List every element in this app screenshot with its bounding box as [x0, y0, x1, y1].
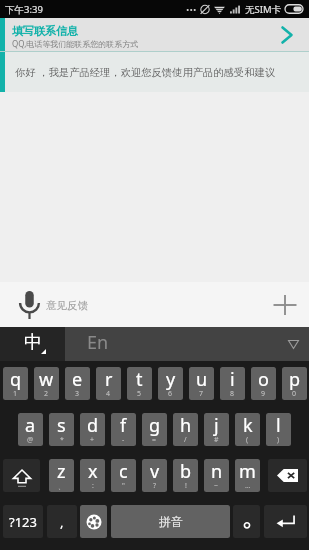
staticText: 意见反馈 — [46, 299, 88, 312]
staticText: 5 — [137, 389, 142, 399]
button[interactable]: En — [65, 327, 309, 361]
button[interactable]: f — [111, 413, 136, 446]
button[interactable]: v — [142, 459, 167, 492]
button[interactable]: , — [47, 505, 77, 538]
staticText: i — [230, 367, 235, 392]
staticText: h — [180, 413, 192, 438]
staticText: 填写联系信息 — [12, 24, 78, 38]
staticText: ~ — [214, 481, 219, 491]
staticText: * — [60, 435, 64, 445]
button[interactable]: ?123 — [3, 505, 43, 538]
staticText: 下午3:39 — [5, 3, 43, 16]
staticText: En — [87, 330, 109, 355]
staticText: m — [239, 459, 256, 484]
button[interactable]: x — [80, 459, 105, 492]
staticText: ( — [246, 435, 249, 445]
staticText: 6 — [168, 389, 173, 399]
staticText: 中 — [24, 331, 42, 354]
button[interactable]: Add attachment — [266, 286, 304, 324]
staticText: 、 — [58, 482, 65, 491]
staticText: + — [90, 435, 95, 445]
button[interactable]: r — [96, 367, 121, 400]
staticText: g — [149, 413, 161, 438]
staticText: o — [258, 367, 269, 392]
button[interactable]: g — [142, 413, 167, 446]
button[interactable]: Voice input — [9, 285, 49, 325]
button[interactable]: Change language — [80, 505, 107, 538]
button[interactable]: u — [189, 367, 214, 400]
staticText: d — [87, 413, 99, 438]
button[interactable]: p — [282, 367, 307, 400]
staticText: … — [245, 481, 251, 491]
button[interactable]: m — [235, 459, 260, 492]
staticText: l — [276, 413, 281, 438]
staticText: y — [166, 367, 176, 392]
button[interactable]: t — [127, 367, 152, 400]
staticText: 你好 ，我是产品经理，欢迎您反馈使用产品的感受和建议 — [15, 65, 276, 79]
staticText: n — [211, 459, 223, 484]
staticText: e — [72, 367, 83, 392]
staticText: c — [119, 459, 128, 484]
staticText: 9 — [261, 389, 266, 399]
button[interactable]: n — [204, 459, 229, 492]
button[interactable]: w — [34, 367, 59, 400]
staticText: @ — [27, 435, 34, 445]
staticText: x — [88, 459, 98, 484]
staticText: " — [122, 481, 125, 491]
staticText: k — [243, 413, 253, 438]
staticText: 3 — [75, 389, 80, 399]
staticText: r — [105, 367, 113, 392]
button[interactable]: l — [266, 413, 291, 446]
staticText: 1 — [13, 389, 18, 399]
staticText: 7 — [199, 389, 204, 399]
button[interactable]: Shift — [3, 459, 40, 492]
staticText: t — [136, 367, 143, 392]
staticText: ) — [277, 435, 280, 445]
staticText: 无SIM卡 — [245, 3, 282, 16]
button[interactable]: s — [49, 413, 74, 446]
staticText: 8 — [230, 389, 235, 399]
staticText: f — [120, 413, 127, 438]
staticText: : — [92, 481, 94, 491]
button[interactable]: y — [158, 367, 183, 400]
button[interactable]: 拼音 — [111, 505, 230, 538]
button[interactable]: o — [251, 367, 276, 400]
button[interactable]: Enter — [264, 505, 307, 538]
staticText: ? — [153, 481, 157, 491]
button[interactable]: z — [49, 459, 74, 492]
button[interactable]: d — [80, 413, 105, 446]
staticText: b — [180, 459, 192, 484]
staticText: ! — [185, 481, 187, 491]
button[interactable]: 填写联系信息 — [0, 18, 309, 52]
button[interactable]: Backspace — [268, 459, 307, 492]
button[interactable]: i — [220, 367, 245, 400]
button[interactable]: b — [173, 459, 198, 492]
staticText: p — [289, 367, 301, 392]
staticText: q — [10, 367, 22, 392]
staticText: QQ,电话等我们能联系您的联系方式 — [12, 38, 139, 49]
staticText: 拼音 — [159, 514, 183, 529]
staticText: w — [39, 367, 54, 392]
staticText: ?123 — [9, 513, 37, 531]
button[interactable]: a — [18, 413, 43, 446]
other: Hide keyboard — [288, 340, 299, 349]
staticText: u — [196, 367, 208, 392]
staticText: 2 — [44, 389, 49, 399]
button[interactable]: q — [3, 367, 28, 400]
button[interactable]: j — [204, 413, 229, 446]
staticText: s — [57, 413, 66, 438]
staticText: 4 — [106, 389, 111, 399]
staticText: / — [184, 435, 187, 445]
other: Open — [277, 25, 297, 45]
button[interactable]: h — [173, 413, 198, 446]
button[interactable]: Period — [233, 505, 260, 538]
staticText: j — [214, 413, 219, 438]
staticText: - — [122, 435, 125, 445]
button[interactable]: e — [65, 367, 90, 400]
button[interactable]: k — [235, 413, 260, 446]
staticText: z — [57, 459, 66, 484]
staticText: a — [25, 413, 36, 438]
button[interactable]: 中 — [0, 327, 65, 361]
staticText: 0 — [292, 389, 297, 399]
button[interactable]: c — [111, 459, 136, 492]
